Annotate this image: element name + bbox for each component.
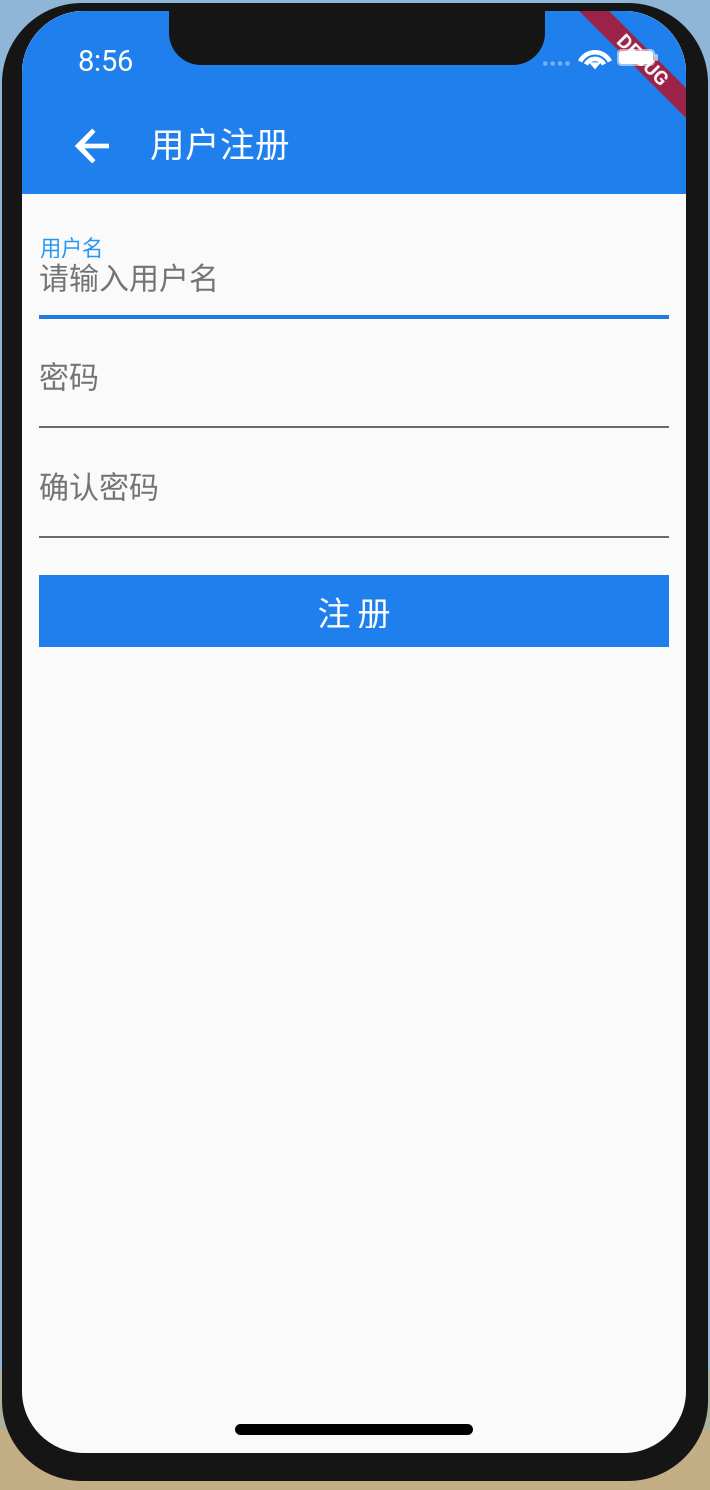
button[interactable]: 密码 — [39, 320, 669, 430]
staticText: 密码 — [39, 353, 99, 396]
staticText: 请输入用户名 — [39, 254, 219, 297]
button[interactable]: Back — [58, 111, 128, 181]
staticText: 用户注册 — [150, 117, 290, 167]
staticText: DEBUG — [611, 48, 675, 72]
button[interactable]: 注 册 — [39, 575, 669, 647]
staticText: 用户名 — [40, 231, 103, 262]
button[interactable]: 用户名 — [39, 210, 669, 320]
staticText: 确认密码 — [39, 463, 159, 506]
staticText: 8:56 — [78, 44, 133, 78]
button[interactable]: 确认密码 — [39, 430, 669, 540]
staticText: 注 册 — [317, 587, 390, 635]
